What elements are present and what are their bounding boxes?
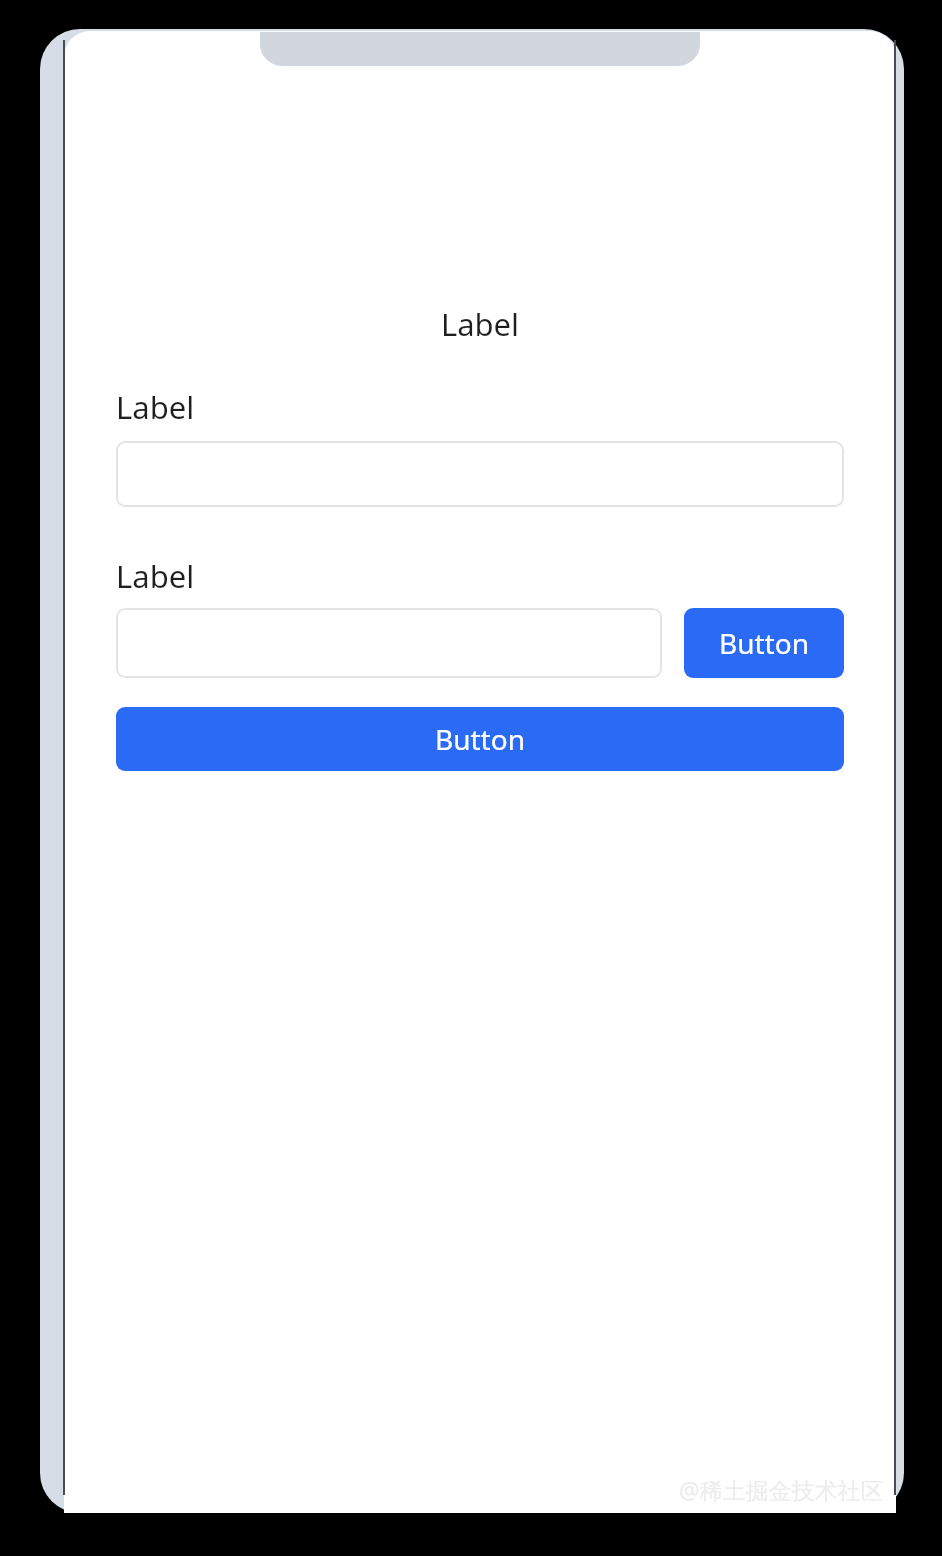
staticText: Label <box>116 386 195 428</box>
staticText: Button <box>719 624 809 662</box>
staticText: Label <box>116 555 195 597</box>
button[interactable]: Button <box>684 608 844 678</box>
staticText: Label <box>64 303 896 345</box>
button[interactable]: Button <box>116 707 844 771</box>
staticText: Button <box>435 720 525 758</box>
button[interactable] <box>116 608 662 678</box>
staticText: @稀土掘金技术社区 <box>679 1474 884 1505</box>
button[interactable] <box>116 441 844 507</box>
